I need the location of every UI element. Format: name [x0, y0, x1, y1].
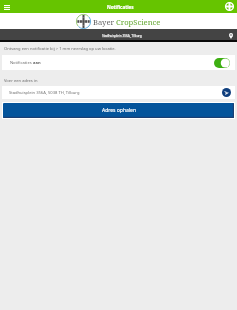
staticText: Bayer — [93, 17, 116, 27]
button[interactable]: Notificaties — [2, 55, 235, 70]
button[interactable]: Gebruik huidige locatie — [222, 88, 231, 97]
staticText: Notificaties — [10, 60, 33, 66]
staticText: Stadhuisplein 356A, Tilburg — [102, 34, 142, 38]
staticText: CropScience — [116, 17, 161, 27]
staticText: Ontvang een notificatie bij > 1 mm neers… — [4, 46, 116, 52]
button[interactable]: Adres ophalen — [3, 103, 234, 118]
staticText: Stadhuisplein 356A, 5038 TH, Tilburg — [9, 90, 80, 96]
staticText: Adres ophalen — [102, 107, 136, 114]
button[interactable]: Bayer — [224, 1, 235, 12]
staticText: aan — [33, 60, 41, 66]
button[interactable]: Notificaties aan/uit — [214, 58, 230, 68]
button[interactable]: Menu — [1, 1, 13, 13]
staticText: Voer een adres in — [4, 78, 38, 84]
staticText: Notificaties — [107, 4, 134, 10]
button[interactable]: Stadhuisplein 356A, Tilburg — [0, 29, 237, 42]
button[interactable]: Locatie — [226, 31, 236, 41]
button[interactable]: Stadhuisplein 356A, 5038 TH, Tilburg — [2, 86, 235, 99]
